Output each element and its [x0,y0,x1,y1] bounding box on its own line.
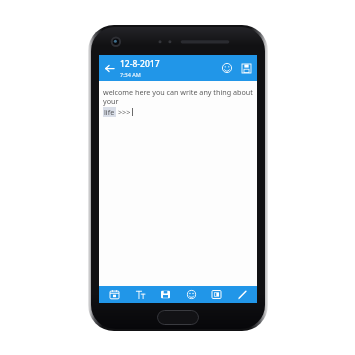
staticText: welcome here you can write any thing abo… [103,87,254,106]
button[interactable]: Back [99,55,119,81]
button[interactable]: Save note [237,55,255,81]
staticText: 12-8-2017 [120,58,160,70]
button[interactable]: Emoji [179,286,203,303]
button[interactable]: Home [157,310,199,325]
staticText: life [104,107,115,117]
staticText: >>> [118,107,131,117]
button[interactable]: Insert emoji [217,55,237,81]
staticText: 7:34 AM [120,71,141,78]
button[interactable]: Calendar [102,286,126,303]
button[interactable]: Text format [128,286,152,303]
button[interactable]: welcome here you can write any thing abo… [99,81,257,286]
button[interactable]: Save [153,286,177,303]
button[interactable]: Draw [230,286,254,303]
button[interactable]: Insert image [204,286,228,303]
